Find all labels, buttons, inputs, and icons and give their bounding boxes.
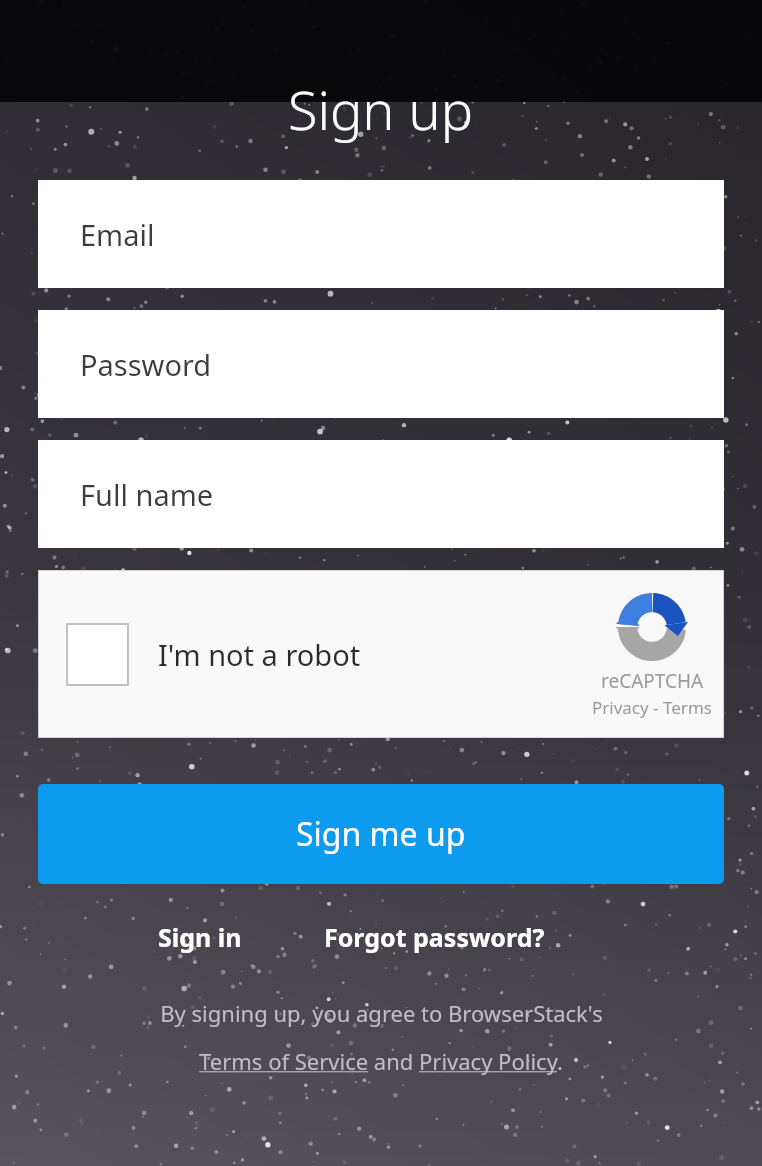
staticText: Password (80, 345, 212, 384)
staticText: Sign me up (296, 812, 466, 856)
staticText: Email (80, 215, 155, 254)
button[interactable]: Password (38, 310, 724, 418)
staticText: Forgot password? (324, 920, 545, 954)
staticText: Sign up (288, 72, 474, 146)
other: reCAPTCHA logo (615, 590, 689, 664)
button[interactable]: Sign me up (38, 784, 724, 884)
staticText: reCAPTCHA (601, 668, 704, 694)
button[interactable]: Forgot password? (314, 912, 555, 962)
staticText: Terms of Service and Privacy Policy. (199, 1046, 563, 1076)
button[interactable]: Full name (38, 440, 724, 548)
staticText: Sign in (158, 920, 242, 954)
button[interactable]: Email (38, 180, 724, 288)
staticText: Full name (80, 475, 214, 514)
button[interactable]: Terms of Service and Privacy Policy. (0, 1046, 762, 1076)
button[interactable]: Sign in (148, 912, 252, 962)
staticText: By signing up, you agree to BrowserStack… (160, 998, 603, 1028)
staticText: Privacy - Terms (592, 696, 712, 719)
button[interactable]: I'm not a robot checkbox (66, 623, 129, 686)
staticText: I'm not a robot (158, 635, 361, 674)
